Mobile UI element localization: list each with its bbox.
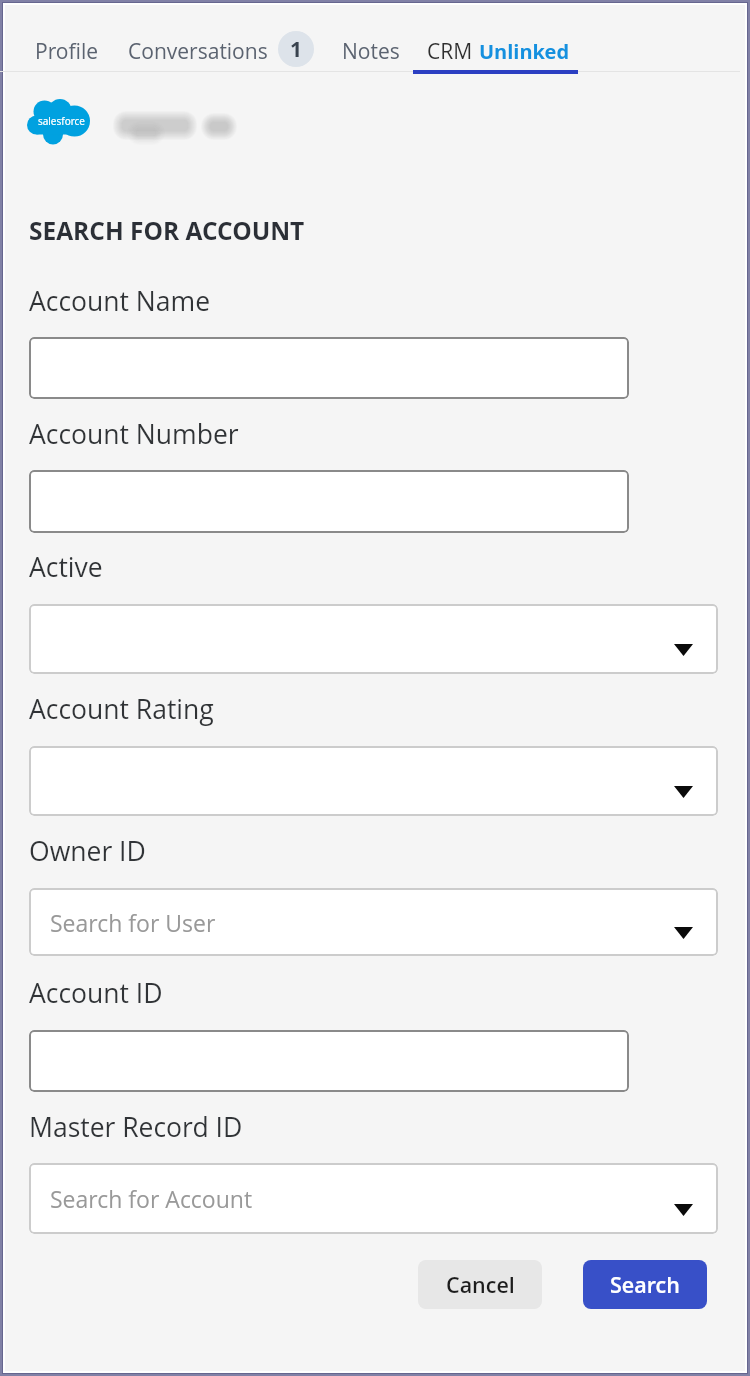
staticText: Cancel (446, 1270, 515, 1299)
button[interactable]: Owner ID (29, 888, 718, 956)
staticText: Search (610, 1270, 680, 1299)
staticText: Account ID (29, 975, 163, 1011)
staticText: Account Number (29, 416, 239, 452)
button[interactable]: Master Record ID (29, 1163, 718, 1234)
staticText: Notes (342, 37, 400, 66)
staticText: Account Name (29, 283, 211, 319)
button[interactable]: Account ID (29, 1030, 629, 1092)
button[interactable]: Notes (327, 28, 415, 74)
button[interactable]: Active (29, 604, 718, 674)
button[interactable]: Search (583, 1260, 707, 1309)
button[interactable]: Conversations (113, 28, 314, 74)
button[interactable]: Account Rating (29, 746, 718, 816)
button[interactable]: CRM (412, 28, 584, 74)
button[interactable]: Account Name (29, 337, 629, 399)
button[interactable]: Profile (20, 28, 113, 74)
button[interactable]: Account Number (29, 470, 629, 533)
staticText: Profile (35, 37, 98, 66)
staticText: CRM (427, 37, 473, 66)
staticText: Unlinked (479, 38, 570, 65)
staticText: SEARCH FOR ACCOUNT (29, 214, 305, 247)
staticText: Search for Account (50, 1183, 253, 1214)
button[interactable]: Cancel (418, 1260, 542, 1309)
staticText: Master Record ID (29, 1109, 243, 1145)
staticText: Search for User (50, 907, 216, 938)
staticText: 1 (290, 35, 302, 64)
staticText: Conversations (128, 37, 268, 66)
staticText: salesforce (38, 114, 85, 128)
staticText: Active (29, 549, 103, 585)
staticText: Owner ID (29, 833, 146, 869)
staticText: Account Rating (29, 691, 214, 727)
